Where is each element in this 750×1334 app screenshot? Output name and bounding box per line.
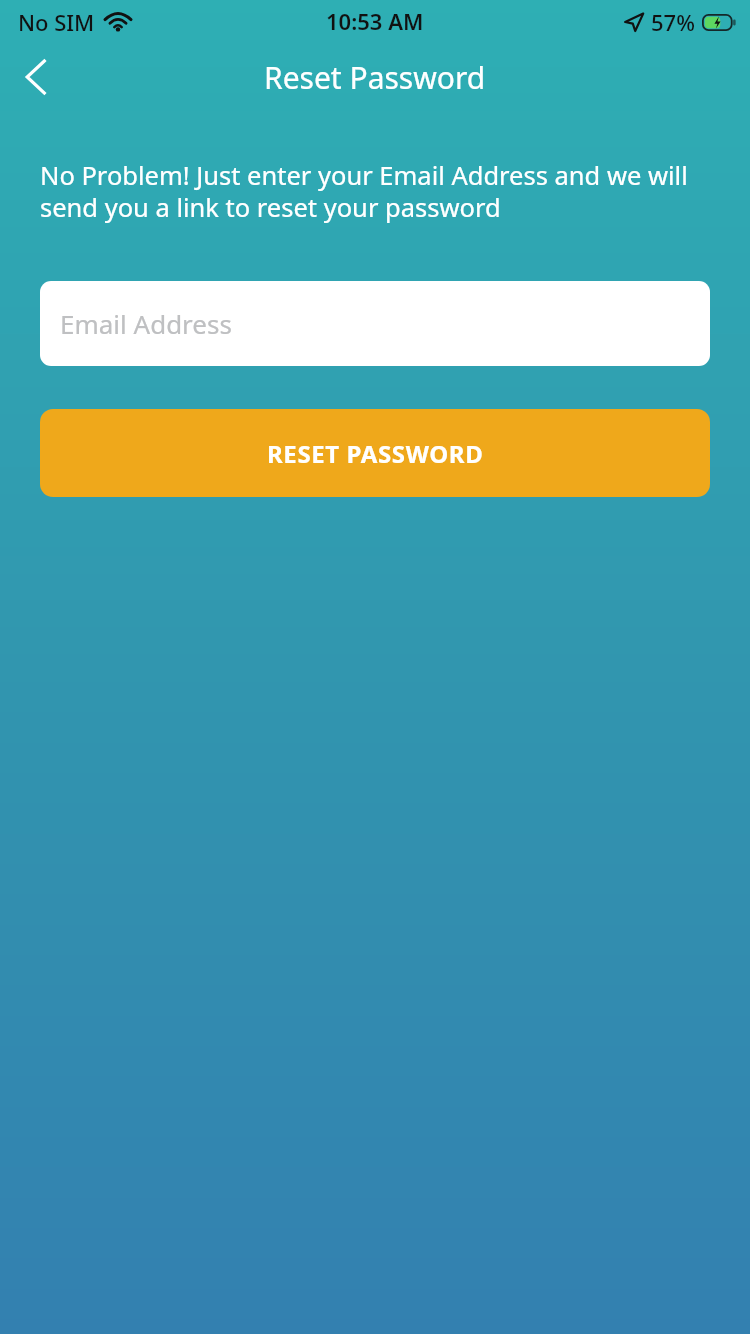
button[interactable]: Back: [0, 44, 72, 110]
button[interactable]: RESET PASSWORD: [40, 409, 710, 497]
staticText: Reset Password: [264, 57, 486, 98]
staticText: No SIM: [18, 7, 95, 37]
staticText: RESET PASSWORD: [267, 437, 484, 470]
staticText: 10:53 AM: [326, 6, 424, 36]
staticText: 57%: [651, 7, 695, 37]
staticText: Email Address: [60, 306, 232, 341]
staticText: No Problem! Just enter your Email Addres…: [40, 158, 712, 225]
button[interactable]: Email Address: [40, 281, 710, 366]
